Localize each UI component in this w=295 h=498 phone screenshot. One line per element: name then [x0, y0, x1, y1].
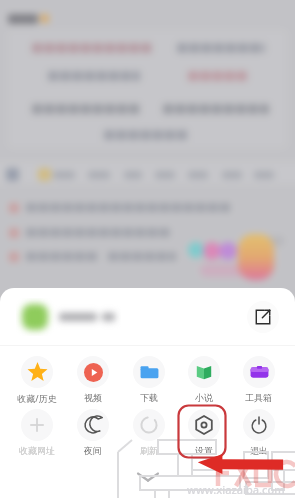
- staticText: 刷新: [140, 445, 158, 456]
- button[interactable]: 工具箱: [231, 356, 286, 403]
- button[interactable]: 收藏网址: [9, 409, 65, 456]
- staticText: 收藏网址: [19, 445, 55, 456]
- button[interactable]: 小说: [176, 356, 231, 403]
- staticText: 视频: [84, 392, 102, 403]
- button[interactable]: [16, 288, 247, 345]
- button[interactable]: 设置: [176, 409, 231, 456]
- button[interactable]: 刷新: [121, 409, 176, 456]
- button[interactable]: 夜间: [65, 409, 121, 456]
- staticText: 夜间: [84, 445, 102, 456]
- staticText: 收藏/历史: [17, 392, 57, 403]
- staticText: www.xiazaiba.com: [187, 482, 285, 497]
- staticText: 下载: [140, 392, 158, 403]
- staticText: 工具箱: [245, 392, 272, 403]
- button[interactable]: 下载: [121, 356, 176, 403]
- button[interactable]: 收藏/历史: [9, 356, 65, 403]
- staticText: 设置: [195, 445, 213, 456]
- button[interactable]: 退出: [231, 409, 286, 456]
- button[interactable]: Collapse: [125, 465, 171, 489]
- button[interactable]: Open in browser: [247, 301, 279, 333]
- staticText: 退出: [250, 445, 268, 456]
- staticText: 小说: [195, 392, 213, 403]
- button[interactable]: 视频: [65, 356, 121, 403]
